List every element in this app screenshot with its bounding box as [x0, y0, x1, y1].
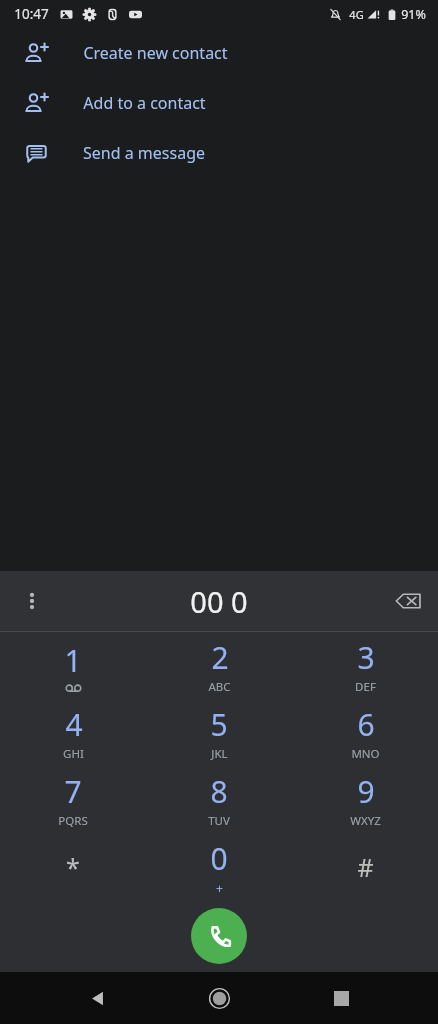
button[interactable]: 1: [0, 632, 146, 699]
staticText: 4G: [349, 7, 364, 22]
button[interactable]: #: [292, 833, 438, 900]
button[interactable]: 5: [146, 699, 292, 766]
button[interactable]: Backspace: [384, 577, 432, 625]
staticText: 3: [357, 637, 375, 678]
button[interactable]: 3: [292, 632, 438, 699]
staticText: +: [216, 880, 223, 896]
staticText: 7: [64, 771, 82, 812]
staticText: WXYZ: [350, 813, 381, 829]
button[interactable]: More options: [10, 579, 54, 623]
staticText: Send a message: [83, 142, 205, 164]
staticText: TUV: [208, 813, 230, 829]
staticText: 10:47: [14, 5, 49, 23]
staticText: 5: [210, 704, 228, 745]
staticText: GHI: [63, 746, 84, 762]
staticText: Create new contact: [83, 42, 228, 64]
staticText: PQRS: [58, 813, 88, 829]
button[interactable]: 2: [146, 632, 292, 699]
button[interactable]: Add to a contact: [0, 78, 438, 128]
staticText: MNO: [351, 746, 380, 762]
button[interactable]: Send a message: [0, 128, 438, 178]
button[interactable]: *: [0, 833, 146, 900]
staticText: 6: [357, 704, 375, 745]
button[interactable]: Home: [195, 974, 243, 1022]
button[interactable]: Recents: [317, 974, 365, 1022]
staticText: 4: [65, 704, 83, 745]
staticText: DEF: [355, 679, 376, 695]
staticText: 0: [210, 838, 228, 879]
staticText: #: [357, 850, 374, 884]
staticText: 9: [357, 771, 375, 812]
staticText: JKL: [211, 746, 228, 762]
button[interactable]: 0: [146, 833, 292, 900]
staticText: 1: [64, 640, 82, 681]
staticText: ABC: [208, 679, 231, 695]
button[interactable]: 8: [146, 766, 292, 833]
staticText: Add to a contact: [83, 92, 206, 114]
staticText: *: [66, 850, 80, 884]
staticText: 2: [211, 637, 229, 678]
button[interactable]: 4: [0, 699, 146, 766]
staticText: 8: [210, 771, 228, 812]
button[interactable]: Create new contact: [0, 28, 438, 78]
button[interactable]: 7: [0, 766, 146, 833]
button[interactable]: 9: [292, 766, 438, 833]
staticText: 00 0: [190, 582, 248, 621]
button[interactable]: Call: [191, 908, 247, 964]
button[interactable]: 6: [292, 699, 438, 766]
staticText: 91%: [401, 6, 426, 23]
button[interactable]: Back: [74, 974, 122, 1022]
